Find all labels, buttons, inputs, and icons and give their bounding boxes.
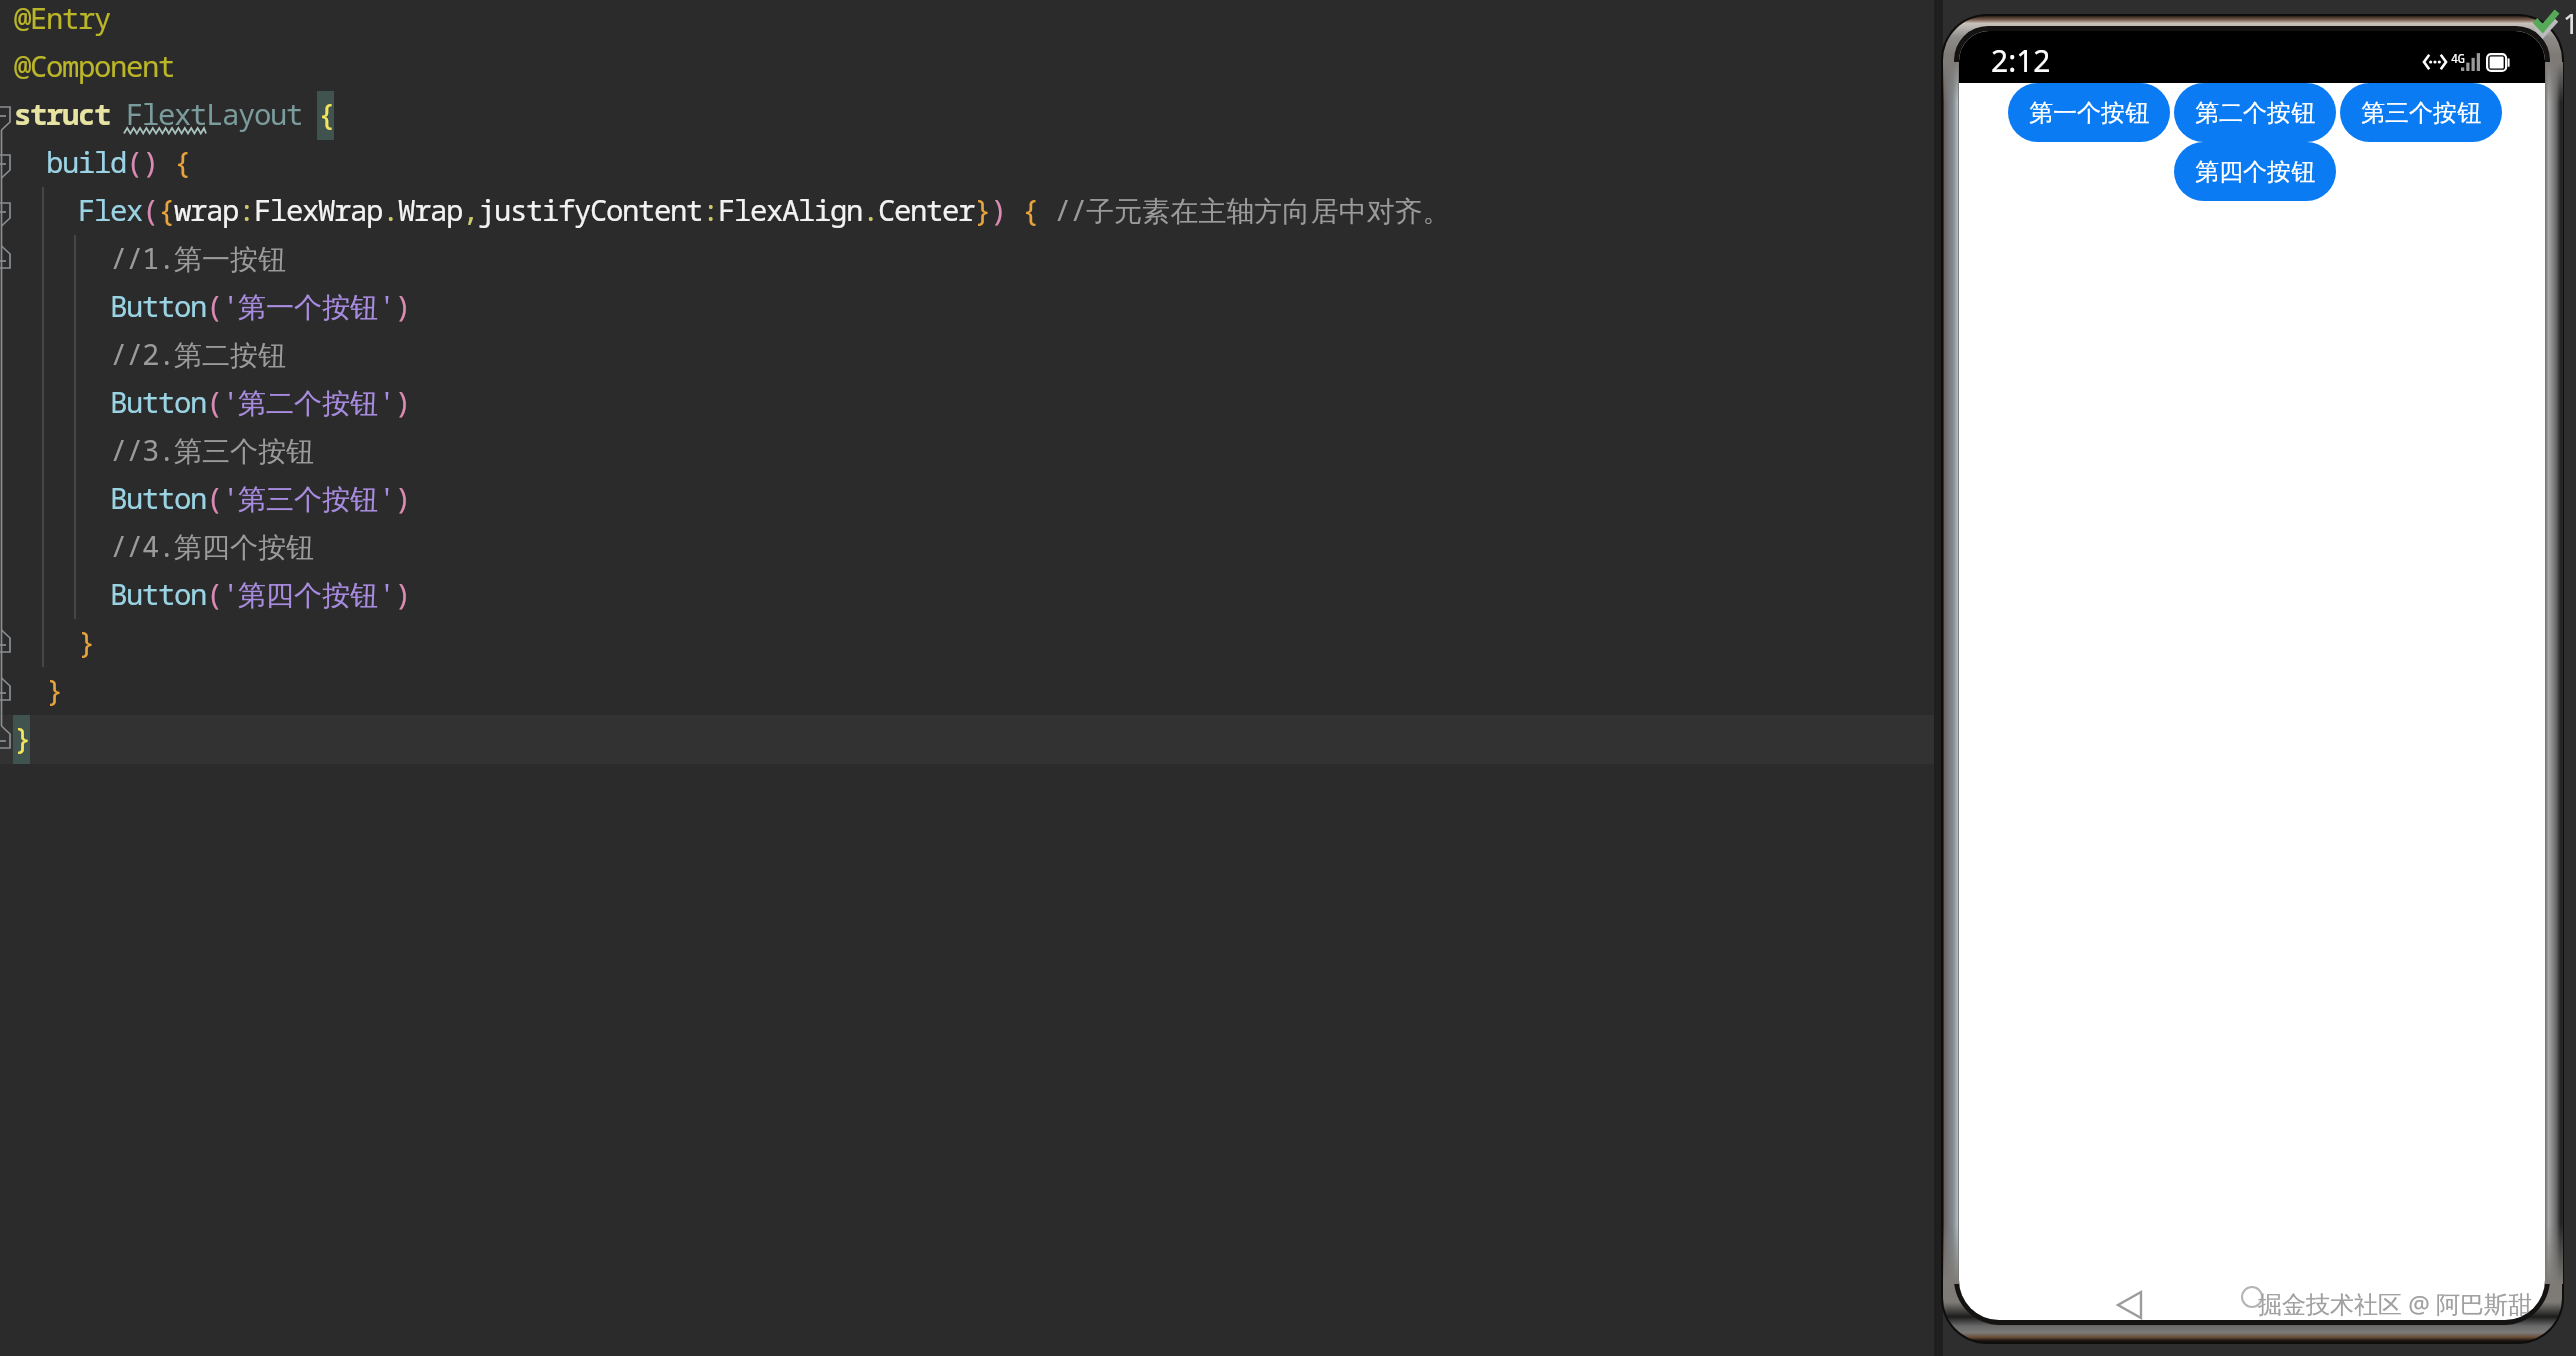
staticText: 第四个按钮	[2195, 157, 2315, 187]
staticText: 第三个按钮	[2361, 98, 2481, 128]
staticText: 4G	[2451, 50, 2465, 66]
staticText: 1	[2563, 4, 2576, 42]
staticText: struct FlextLayout {	[14, 94, 335, 133]
button[interactable]: 第四个按钮	[2174, 142, 2336, 201]
staticText: Flex({wrap:FlexWrap.Wrap,justifyContent:…	[78, 190, 1451, 229]
staticText: Button('第一个按钮')	[110, 286, 411, 325]
staticText: build() {	[46, 142, 191, 181]
staticText: //3.第三个按钮	[110, 430, 315, 469]
staticText: Button('第二个按钮')	[110, 382, 411, 421]
staticText: //4.第四个按钮	[110, 526, 315, 565]
button[interactable]: Back	[2106, 1281, 2152, 1320]
staticText: @Component	[14, 46, 175, 85]
button[interactable]: Inspections: no problems found	[2532, 4, 2576, 42]
staticText: //2.第二按钮	[110, 334, 287, 373]
staticText: @Entry	[14, 0, 111, 37]
staticText: 第二个按钮	[2195, 98, 2315, 128]
button[interactable]: 第二个按钮	[2174, 83, 2336, 142]
staticText: }	[78, 622, 95, 661]
button[interactable]: 第三个按钮	[2340, 83, 2502, 142]
staticText: Button('第四个按钮')	[110, 574, 411, 613]
staticText: 掘金技术社区 @ 阿巴斯甜	[2258, 1287, 2533, 1320]
button[interactable]: 第一个按钮	[2008, 83, 2170, 142]
staticText: }	[14, 718, 31, 757]
staticText: 第一个按钮	[2029, 98, 2149, 128]
staticText: 2:12	[1991, 40, 2051, 81]
staticText: }	[46, 670, 63, 709]
staticText: Button('第三个按钮')	[110, 478, 411, 517]
staticText: //1.第一按钮	[110, 238, 287, 277]
